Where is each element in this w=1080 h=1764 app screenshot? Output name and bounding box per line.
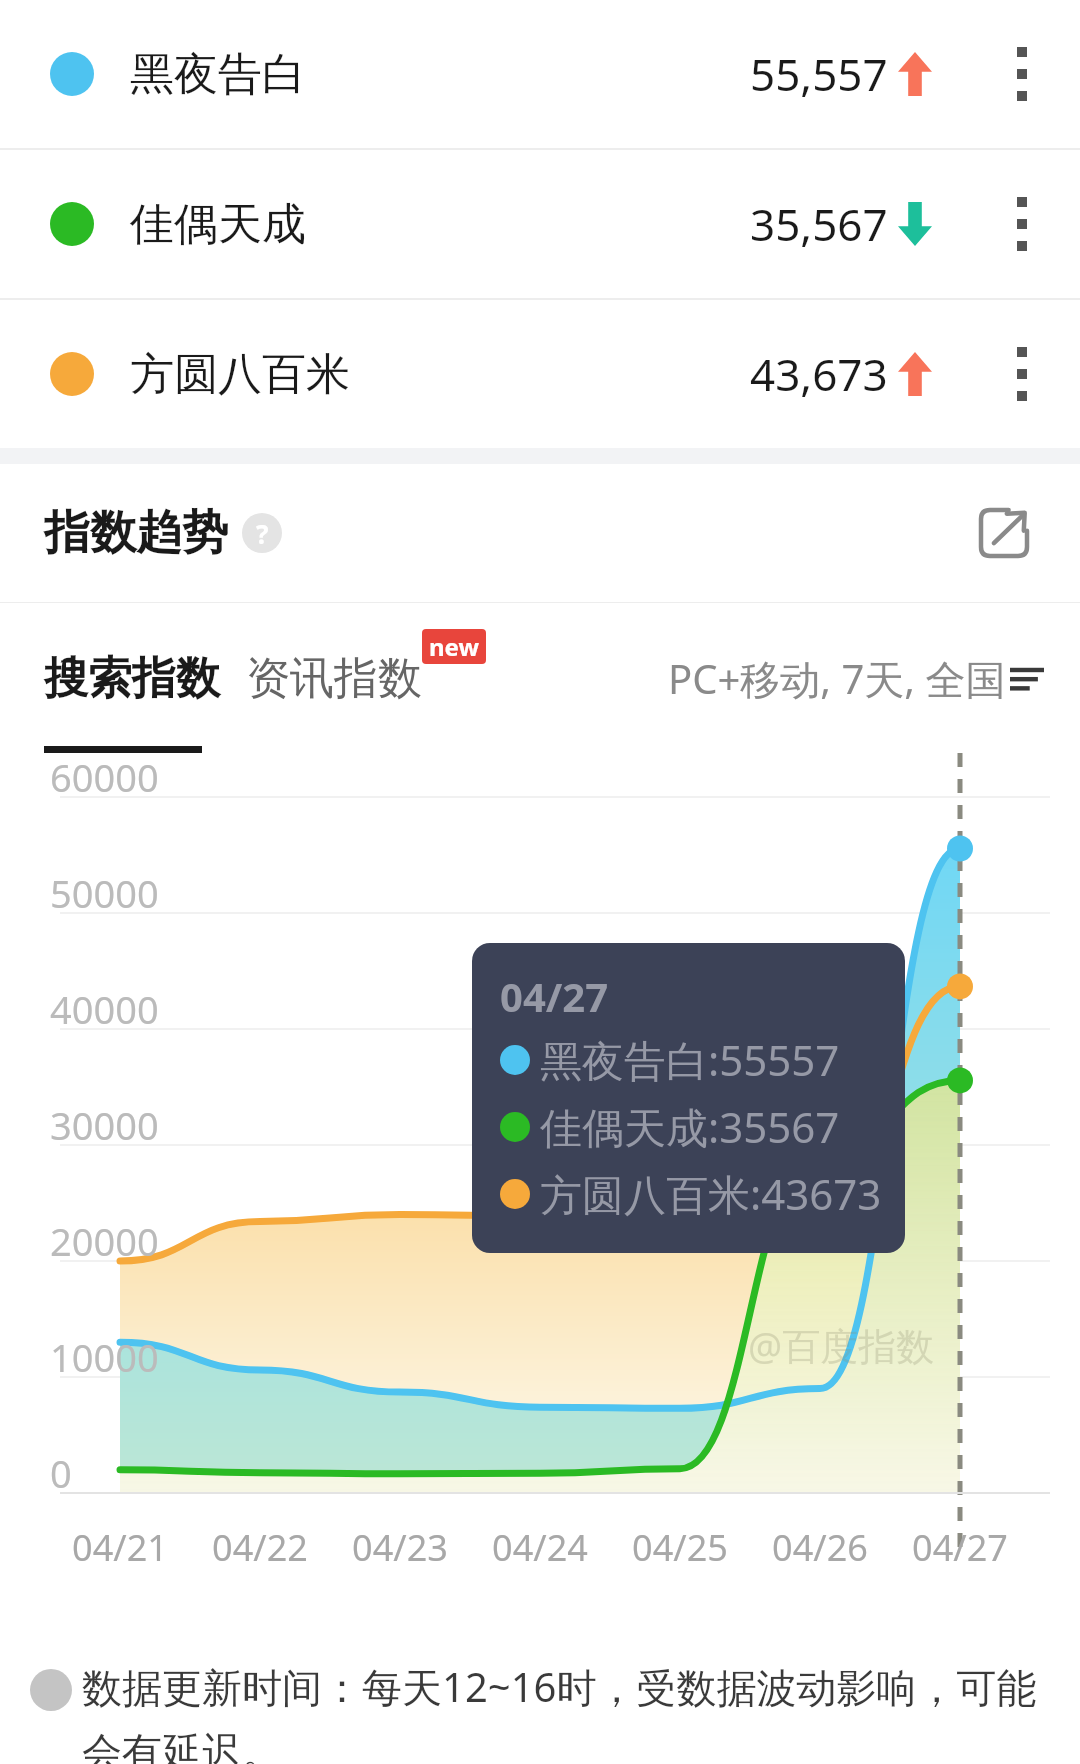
button[interactable]: 资讯指数 — [246, 651, 422, 706]
button[interactable]: More options — [992, 29, 1052, 119]
staticText: 20000 — [50, 1215, 159, 1267]
staticText: 数据更新时间：每天12~16时，受数据波动影响，可能会有延迟。 — [82, 1659, 1040, 1764]
staticText: 43,673 — [750, 344, 888, 404]
button[interactable]: 黑夜告白 — [0, 0, 1080, 148]
staticText: 04/23 — [338, 1523, 462, 1572]
staticText: 佳偶天成:35567 — [540, 1098, 840, 1155]
button[interactable]: PC+移动, 7天, 全国 — [668, 651, 1044, 706]
staticText: 0 — [50, 1447, 72, 1499]
staticText: 佳偶天成 — [130, 197, 306, 252]
button[interactable]: Help — [242, 513, 282, 553]
button[interactable]: 方圆八百米 — [0, 300, 1080, 448]
staticText: 30000 — [50, 1099, 159, 1151]
staticText: 04/26 — [758, 1523, 882, 1572]
button[interactable]: More options — [992, 179, 1052, 269]
button[interactable]: More options — [992, 329, 1052, 419]
staticText: 40000 — [50, 983, 159, 1035]
staticText: 黑夜告白:55557 — [540, 1031, 840, 1088]
staticText: 方圆八百米:43673 — [540, 1165, 882, 1222]
staticText: new — [429, 630, 479, 663]
button[interactable]: 佳偶天成 — [0, 150, 1080, 298]
staticText: PC+移动, 7天, 全国 — [668, 651, 1006, 706]
staticText: 04/27 — [898, 1523, 1022, 1572]
button[interactable]: 04/27 — [472, 943, 905, 1253]
staticText: 方圆八百米 — [130, 347, 350, 402]
staticText: 50000 — [50, 867, 159, 919]
button[interactable]: 搜索指数 — [44, 651, 220, 706]
staticText: 资讯指数 — [246, 651, 422, 706]
staticText: ? — [256, 516, 269, 551]
staticText: 搜索指数 — [44, 651, 220, 706]
staticText: 04/27 — [500, 969, 609, 1023]
staticText: 10000 — [50, 1331, 159, 1383]
staticText: 60000 — [50, 751, 159, 803]
staticText: 35,567 — [750, 194, 888, 254]
staticText: 04/25 — [618, 1523, 742, 1572]
staticText: 55,557 — [750, 44, 888, 104]
staticText: 指数趋势 — [44, 504, 228, 562]
button[interactable]: Share — [972, 501, 1036, 565]
staticText: 04/22 — [198, 1523, 322, 1572]
staticText: @百度指数 — [748, 1319, 935, 1371]
staticText: 黑夜告白 — [130, 47, 306, 102]
staticText: 04/24 — [478, 1523, 602, 1572]
staticText: 04/21 — [58, 1523, 182, 1572]
